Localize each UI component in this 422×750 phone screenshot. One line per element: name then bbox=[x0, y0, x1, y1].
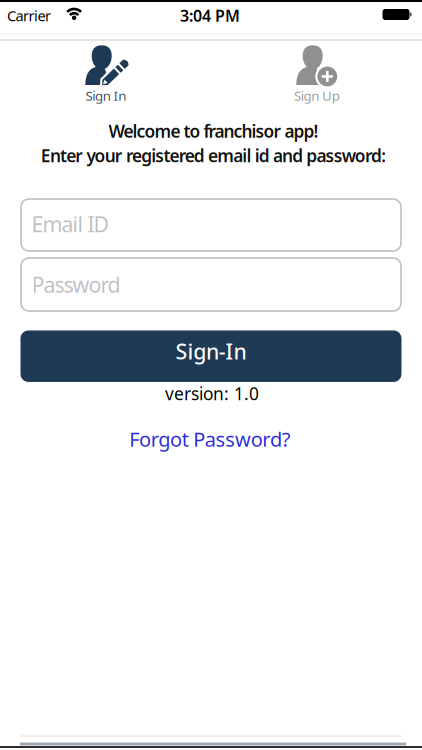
staticText: Forgot Password? bbox=[129, 426, 291, 452]
staticText: version: 1.0 bbox=[165, 382, 259, 405]
staticText: Password bbox=[31, 270, 120, 299]
staticText: Carrier bbox=[7, 6, 51, 25]
staticText: Sign In bbox=[85, 87, 126, 104]
button[interactable]: Sign-In bbox=[20, 330, 401, 382]
staticText: Sign-In bbox=[176, 337, 246, 365]
staticText: 3:04 PM bbox=[180, 5, 240, 26]
button[interactable]: Email ID bbox=[21, 199, 401, 251]
staticText: Enter your registered email id and passw… bbox=[41, 144, 386, 167]
staticText: Sign Up bbox=[294, 87, 340, 104]
button[interactable]: Password bbox=[21, 258, 401, 311]
staticText: Welcome to franchisor app! bbox=[108, 119, 318, 142]
button[interactable]: Sign Up bbox=[211, 40, 421, 110]
button[interactable]: Sign In bbox=[0, 40, 210, 110]
staticText: Email ID bbox=[31, 210, 109, 238]
button[interactable]: Forgot Password? bbox=[60, 422, 360, 456]
